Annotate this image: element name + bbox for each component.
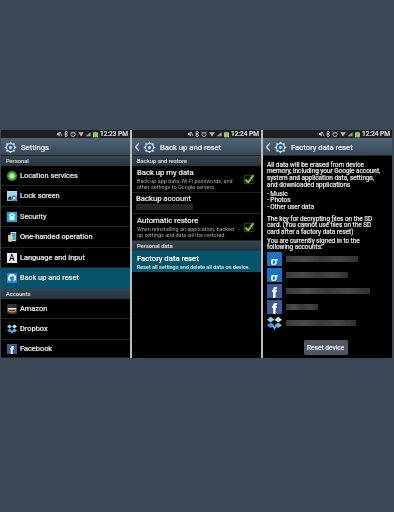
staticText: Lock screen (20, 191, 60, 200)
staticText: 12:24 PM (362, 130, 390, 138)
staticText: Backup and restore (137, 158, 187, 165)
button[interactable]: Lock screen (1, 186, 130, 207)
staticText: Back up and reset (20, 273, 79, 282)
staticText: When reinstalling an application, backed… (137, 226, 234, 238)
staticText: Dropbox (20, 324, 48, 333)
other: Back (135, 143, 140, 151)
staticText: g (270, 267, 279, 281)
staticText: One-handed operation (20, 232, 93, 241)
button[interactable]: Factory data reset (132, 251, 261, 272)
button[interactable]: f (267, 283, 392, 299)
staticText: Factory data reset (291, 143, 353, 152)
button[interactable]: Back up and reset (1, 268, 130, 289)
staticText: Back up and reset (160, 143, 222, 152)
button[interactable]: g (267, 251, 392, 267)
staticText: Language and input (20, 253, 85, 262)
button[interactable]: One-handed operation (1, 227, 130, 248)
button[interactable]: Dropbox (1, 319, 130, 340)
staticText: Backup account (136, 194, 191, 203)
staticText: Facebook (20, 344, 53, 353)
button[interactable]: Automatic restore (132, 214, 261, 241)
button[interactable]: Location services (1, 166, 130, 186)
staticText: All data will be erased from device memo… (267, 161, 381, 189)
staticText: Back up app data, Wi-Fi passwords, and o… (137, 178, 233, 190)
staticText: f (272, 301, 278, 315)
staticText: Location services (20, 171, 78, 180)
staticText: Automatic restore (137, 216, 199, 225)
staticText: Personal (6, 158, 29, 165)
button[interactable]: Backup account (132, 193, 261, 214)
button[interactable]: Amazon (1, 299, 130, 319)
button[interactable]: g (267, 267, 392, 283)
staticText: The key for decrypting files on the SD c… (267, 215, 373, 236)
staticText: Reset all settings and delete all data o… (137, 264, 250, 270)
staticText: g (270, 251, 279, 265)
staticText: Accounts (6, 291, 31, 298)
button[interactable]: f (267, 299, 392, 315)
staticText: Amazon (20, 304, 48, 313)
staticText: Security (20, 212, 47, 221)
staticText: A (9, 253, 15, 263)
staticText: Personal data (137, 243, 173, 250)
button[interactable]: A (1, 248, 130, 268)
staticText: f (272, 285, 278, 299)
staticText: f (10, 345, 14, 355)
button[interactable]: Security (1, 207, 130, 227)
staticText: 12:23 PM (100, 130, 128, 138)
button[interactable]: f (1, 340, 130, 358)
button[interactable]: Back up my data (132, 166, 261, 193)
button[interactable] (267, 315, 392, 331)
staticText: - Music - Photos - Other user data (267, 190, 315, 211)
other: Back (266, 143, 271, 151)
staticText: Back up my data (137, 168, 194, 177)
staticText: Settings (21, 143, 50, 152)
staticText: 12:24 PM (231, 130, 259, 138)
staticText: Reset device (307, 344, 345, 352)
staticText: Factory data reset (137, 254, 199, 263)
button[interactable]: Reset device (304, 340, 348, 355)
staticText: You are currently signed in to the follo… (267, 237, 360, 251)
